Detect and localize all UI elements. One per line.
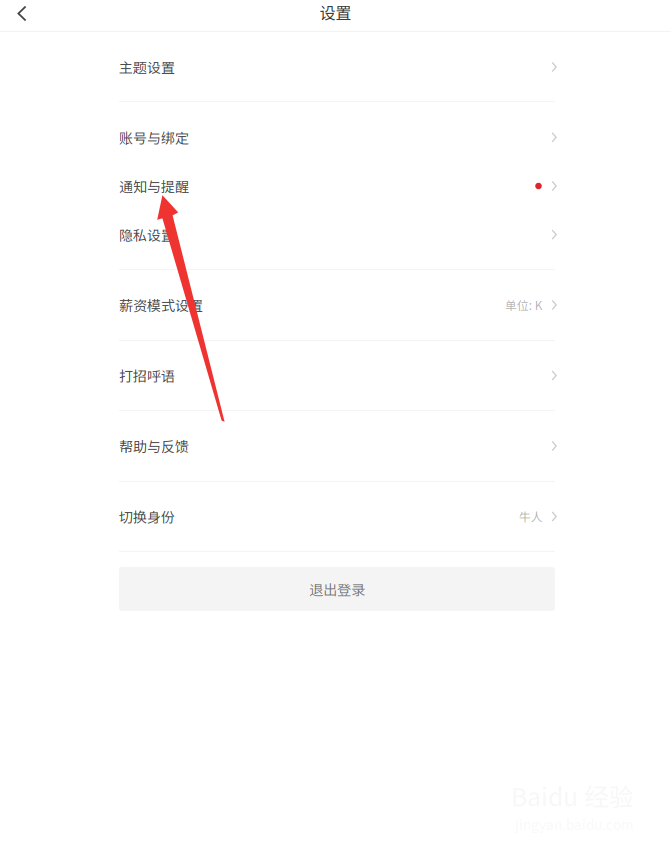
button[interactable]: 打招呼语 (119, 341, 555, 410)
button[interactable]: 退出登录 (119, 567, 555, 611)
button[interactable]: 隐私设置 (119, 210, 555, 259)
staticText: 隐私设置 (119, 224, 175, 245)
staticText: 帮助与反馈 (119, 436, 189, 456)
button[interactable]: 通知与提醒 (119, 162, 555, 210)
staticText: 薪资模式设置 (119, 295, 203, 315)
staticText: 单位: K (505, 296, 543, 313)
button[interactable]: 账号与绑定 (119, 113, 555, 162)
staticText: 退出登录 (309, 579, 365, 599)
staticText: 打招呼语 (119, 365, 175, 386)
staticText: 牛人 (519, 508, 543, 525)
button[interactable]: 返回 (0, 0, 44, 31)
staticText: 账号与绑定 (119, 127, 189, 147)
button[interactable]: 帮助与反馈 (119, 411, 555, 481)
button[interactable]: 切换身份 (119, 482, 555, 551)
staticText: 设置 (319, 0, 351, 23)
button[interactable]: 薪资模式设置 (119, 270, 555, 340)
button[interactable]: 主题设置 (119, 43, 555, 91)
staticText: 通知与提醒 (119, 176, 189, 196)
staticText: 主题设置 (119, 57, 175, 77)
staticText: 切换身份 (119, 506, 175, 527)
